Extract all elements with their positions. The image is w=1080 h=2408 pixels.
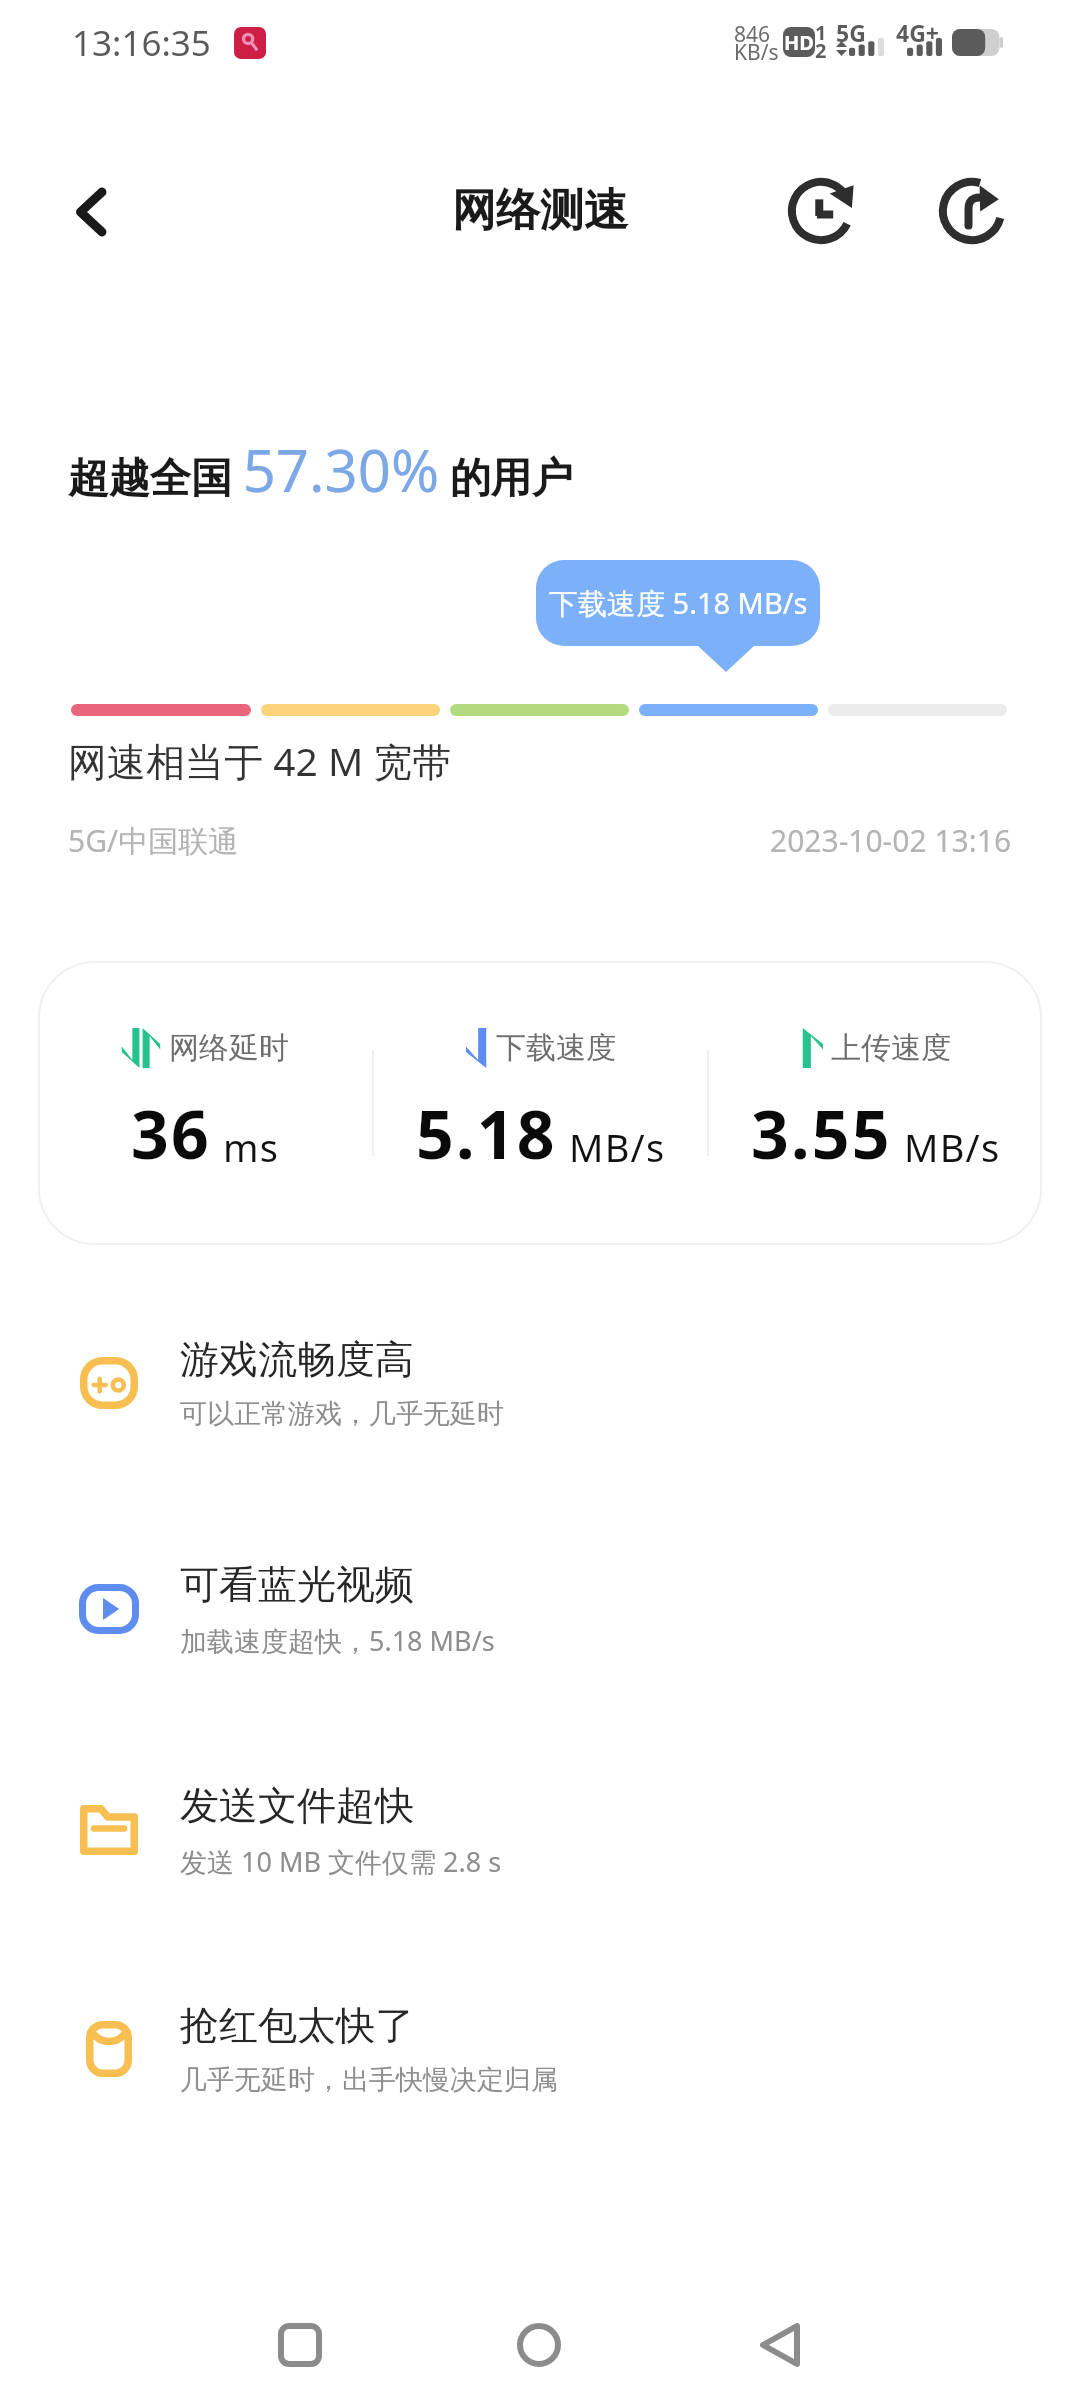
staticText: 上传速度: [831, 1029, 951, 1067]
staticText: 2: [815, 37, 827, 64]
button[interactable]: Recents: [245, 2290, 355, 2400]
button[interactable]: Share: [924, 163, 1020, 259]
button[interactable]: 可看蓝光视频: [0, 1499, 1080, 1719]
button[interactable]: 抢红包太快了: [0, 1939, 1080, 2159]
staticText: 几乎无延时，出手快慢决定归属: [180, 2063, 558, 2097]
staticText: 1: [815, 19, 827, 46]
button[interactable]: Back: [725, 2290, 835, 2400]
button[interactable]: 网络延时: [38, 961, 372, 1245]
button[interactable]: 上传速度: [709, 961, 1042, 1245]
staticText: 超越全国 57.30% 的用户: [68, 430, 573, 509]
staticText: MB/s: [904, 1121, 1001, 1173]
staticText: 网络延时: [169, 1029, 289, 1067]
staticText: 3.55: [751, 1088, 892, 1178]
staticText: 846: [734, 20, 771, 49]
staticText: 发送文件超快: [180, 1781, 414, 1830]
button[interactable]: 发送文件超快: [0, 1720, 1080, 1940]
staticText: 5G: [836, 17, 866, 48]
staticText: KB/s: [734, 38, 779, 67]
staticText: HD: [784, 29, 814, 56]
button[interactable]: 下载速度: [374, 961, 707, 1245]
staticText: 2023-10-02 13:16: [770, 820, 1012, 861]
staticText: 13:16:35: [72, 19, 211, 67]
staticText: 可以正常游戏，几乎无延时: [180, 1397, 504, 1431]
staticText: 抢红包太快了: [180, 2001, 414, 2050]
staticText: 可看蓝光视频: [180, 1560, 414, 1609]
button[interactable]: Back: [48, 168, 136, 256]
staticText: ms: [223, 1121, 280, 1173]
button[interactable]: Home: [484, 2290, 594, 2400]
staticText: 下载速度 5.18 MB/s: [549, 583, 808, 623]
staticText: 下载速度: [496, 1029, 616, 1067]
staticText: 36: [131, 1088, 211, 1178]
button[interactable]: History: [773, 163, 869, 259]
staticText: 网速相当于 42 M 宽带: [68, 734, 452, 787]
staticText: MB/s: [569, 1121, 666, 1173]
staticText: 4G+: [896, 17, 939, 48]
staticText: 发送 10 MB 文件仅需 2.8 s: [180, 1843, 502, 1880]
staticText: 5.18: [416, 1088, 557, 1178]
staticText: 加载速度超快，5.18 MB/s: [180, 1622, 495, 1659]
button[interactable]: 游戏流畅度高: [0, 1273, 1080, 1493]
staticText: 网络测速: [452, 183, 628, 238]
staticText: 游戏流畅度高: [180, 1335, 414, 1384]
staticText: 5G/中国联通: [68, 820, 239, 861]
